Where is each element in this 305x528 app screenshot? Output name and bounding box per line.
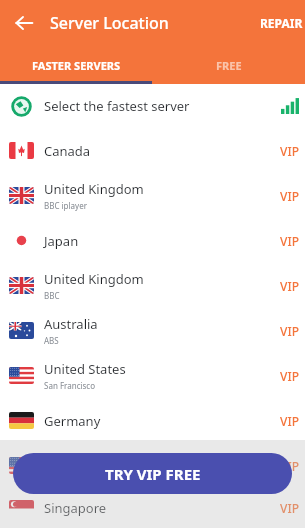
staticText: VIP	[280, 233, 299, 249]
button[interactable]: Singapore	[0, 488, 305, 528]
button[interactable]: REPAIR	[260, 15, 305, 31]
button[interactable]: FASTER SERVERS	[0, 46, 152, 84]
staticText: BBC iplayer	[44, 200, 87, 211]
button[interactable]: Australia	[0, 308, 305, 353]
button[interactable]: Japan	[0, 218, 305, 263]
staticText: Server Location	[50, 12, 169, 34]
button[interactable]: United Kingdom	[0, 263, 305, 308]
staticText: United Kingdom	[44, 270, 144, 288]
button[interactable]: FREE	[152, 46, 305, 84]
staticText: VIP	[280, 458, 299, 474]
staticText: VIP	[280, 323, 299, 339]
staticText: ABS	[44, 335, 59, 346]
staticText: VIP	[280, 143, 299, 159]
staticText: VIP	[280, 500, 299, 516]
button[interactable]: TRY VIP FREE	[13, 453, 292, 494]
button[interactable]: United States	[0, 443, 305, 488]
staticText: VIP	[280, 368, 299, 384]
button[interactable]: Germany	[0, 398, 305, 443]
staticText: Singapore	[44, 499, 107, 517]
staticText: United States	[44, 360, 126, 378]
staticText: FREE	[216, 58, 242, 73]
staticText: United States	[44, 450, 126, 468]
staticText: Canada	[44, 142, 91, 160]
staticText: San Francisco	[44, 380, 96, 391]
button[interactable]: Canada	[0, 128, 305, 173]
staticText: Japan	[44, 232, 79, 250]
staticText: REPAIR	[260, 15, 303, 31]
staticText: Australia	[44, 315, 98, 333]
staticText: VIP	[280, 278, 299, 294]
button[interactable]: Back	[6, 5, 42, 41]
staticText: VIP	[280, 413, 299, 429]
button[interactable]: United Kingdom	[0, 173, 305, 218]
button[interactable]: Select the fastest server	[0, 84, 305, 128]
staticText: Germany	[44, 412, 101, 430]
staticText: United Kingdom	[44, 180, 144, 198]
staticText: BBC	[44, 290, 60, 301]
button[interactable]: United States	[0, 353, 305, 398]
staticText: Select the fastest server	[44, 97, 190, 115]
staticText: VIP	[280, 188, 299, 204]
staticText: FASTER SERVERS	[32, 58, 121, 73]
staticText: TRY VIP FREE	[105, 464, 201, 484]
